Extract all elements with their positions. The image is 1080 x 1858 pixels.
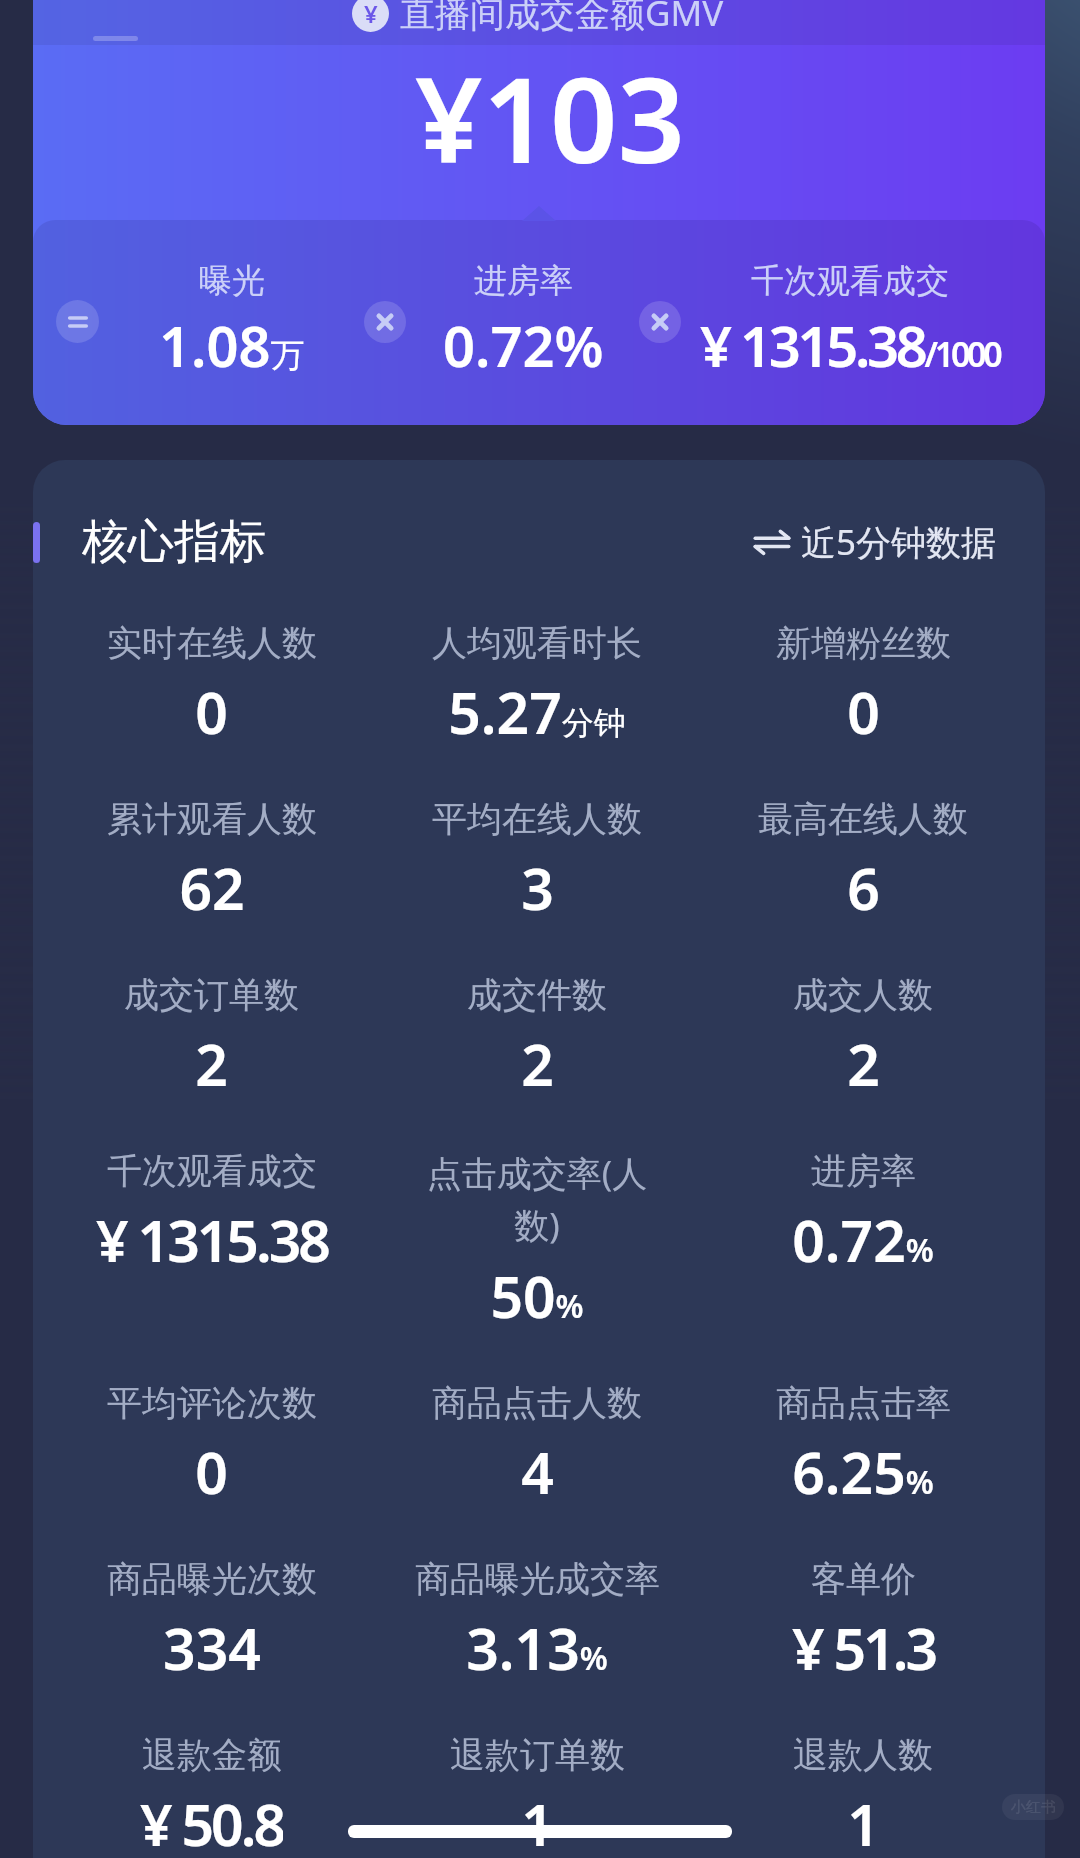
- staticText: 0.72%: [443, 307, 604, 383]
- staticText: 成交订单数: [124, 973, 299, 1017]
- staticText: 5.27分钟: [448, 673, 626, 751]
- staticText: 退款订单数: [450, 1733, 625, 1777]
- button[interactable]: 进房率: [303, 260, 743, 383]
- staticText: 商品点击率: [776, 1381, 951, 1425]
- button[interactable]: =: [56, 300, 99, 343]
- button[interactable]: 客单价: [700, 1557, 1026, 1687]
- staticText: 退款人数: [793, 1733, 933, 1777]
- staticText: 客单价: [811, 1557, 916, 1601]
- button[interactable]: 成交人数: [700, 973, 1026, 1103]
- button[interactable]: Switch data range: [753, 518, 997, 566]
- staticText: ¥: [364, 0, 378, 30]
- staticText: 1.08万: [159, 307, 305, 383]
- staticText: ¥ 51.3: [792, 1609, 935, 1687]
- staticText: 1: [521, 1785, 554, 1858]
- button[interactable]: 退款金额: [49, 1733, 374, 1858]
- button[interactable]: 商品曝光次数: [49, 1557, 374, 1687]
- staticText: 进房率: [811, 1149, 916, 1193]
- staticText: 成交人数: [793, 973, 933, 1017]
- staticText: 退款金额: [142, 1733, 282, 1777]
- button[interactable]: 累计观看人数: [49, 797, 374, 927]
- button[interactable]: 商品点击率: [700, 1381, 1026, 1511]
- staticText: 商品曝光成交率: [415, 1557, 660, 1601]
- button[interactable]: 最高在线人数: [700, 797, 1026, 927]
- button[interactable]: 退款人数: [700, 1733, 1026, 1858]
- staticText: 最高在线人数: [758, 797, 968, 841]
- staticText: 平均在线人数: [432, 797, 642, 841]
- button[interactable]: 点击成交率(人数): [374, 1149, 700, 1335]
- button[interactable]: 人均观看时长: [374, 621, 700, 751]
- staticText: 小红书: [1011, 1798, 1056, 1817]
- staticText: 0.72%: [792, 1201, 934, 1279]
- staticText: 累计观看人数: [107, 797, 317, 841]
- staticText: 2: [195, 1025, 228, 1103]
- button[interactable]: 千次观看成交: [630, 260, 1045, 383]
- staticText: 人均观看时长: [432, 621, 642, 665]
- button[interactable]: 新增粉丝数: [700, 621, 1026, 751]
- staticText: 334: [163, 1609, 261, 1687]
- staticText: 成交件数: [467, 973, 607, 1017]
- button[interactable]: 商品曝光成交率: [374, 1557, 700, 1687]
- staticText: 3: [521, 849, 554, 927]
- button[interactable]: ×: [364, 301, 406, 343]
- staticText: ¥103: [415, 37, 685, 198]
- button[interactable]: 曝光: [33, 260, 452, 383]
- button[interactable]: 进房率: [700, 1149, 1026, 1279]
- staticText: 平均评论次数: [107, 1381, 317, 1425]
- staticText: 3.13%: [466, 1609, 608, 1687]
- staticText: 6.25%: [792, 1433, 934, 1511]
- button[interactable]: 商品点击人数: [374, 1381, 700, 1511]
- staticText: 点击成交率(人数): [412, 1149, 662, 1249]
- staticText: ¥ 1315.38/1000: [700, 307, 1000, 383]
- staticText: 商品曝光次数: [107, 1557, 317, 1601]
- staticText: 商品点击人数: [432, 1381, 642, 1425]
- staticText: 0: [195, 1433, 228, 1511]
- staticText: 千次观看成交: [751, 260, 949, 302]
- staticText: 千次观看成交: [107, 1149, 317, 1193]
- staticText: 6: [847, 849, 880, 927]
- staticText: 2: [847, 1025, 880, 1103]
- staticText: 直播间成交金额GMV: [400, 0, 724, 37]
- button[interactable]: 实时在线人数: [49, 621, 374, 751]
- staticText: 1: [847, 1785, 880, 1858]
- button[interactable]: ×: [639, 301, 681, 343]
- staticText: 进房率: [474, 260, 573, 302]
- button[interactable]: 平均在线人数: [374, 797, 700, 927]
- other: Switch data range: [753, 523, 791, 561]
- button[interactable]: 千次观看成交: [49, 1149, 374, 1279]
- button[interactable]: ¥: [352, 0, 724, 37]
- staticText: ¥ 50.8: [140, 1785, 283, 1858]
- staticText: 2: [521, 1025, 554, 1103]
- button[interactable]: 成交件数: [374, 973, 700, 1103]
- staticText: ¥ 1315.38: [96, 1201, 328, 1279]
- staticText: 实时在线人数: [107, 621, 317, 665]
- staticText: 新增粉丝数: [776, 621, 951, 665]
- staticText: 曝光: [199, 260, 265, 302]
- staticText: 50%: [490, 1257, 584, 1335]
- button[interactable]: 退款订单数: [374, 1733, 700, 1858]
- staticText: 0: [847, 673, 880, 751]
- button[interactable]: 平均评论次数: [49, 1381, 374, 1511]
- staticText: 4: [521, 1433, 554, 1511]
- staticText: 近5分钟数据: [801, 518, 997, 566]
- staticText: 核心指标: [82, 513, 266, 571]
- staticText: 62: [179, 849, 245, 927]
- button[interactable]: 成交订单数: [49, 973, 374, 1103]
- staticText: 0: [195, 673, 228, 751]
